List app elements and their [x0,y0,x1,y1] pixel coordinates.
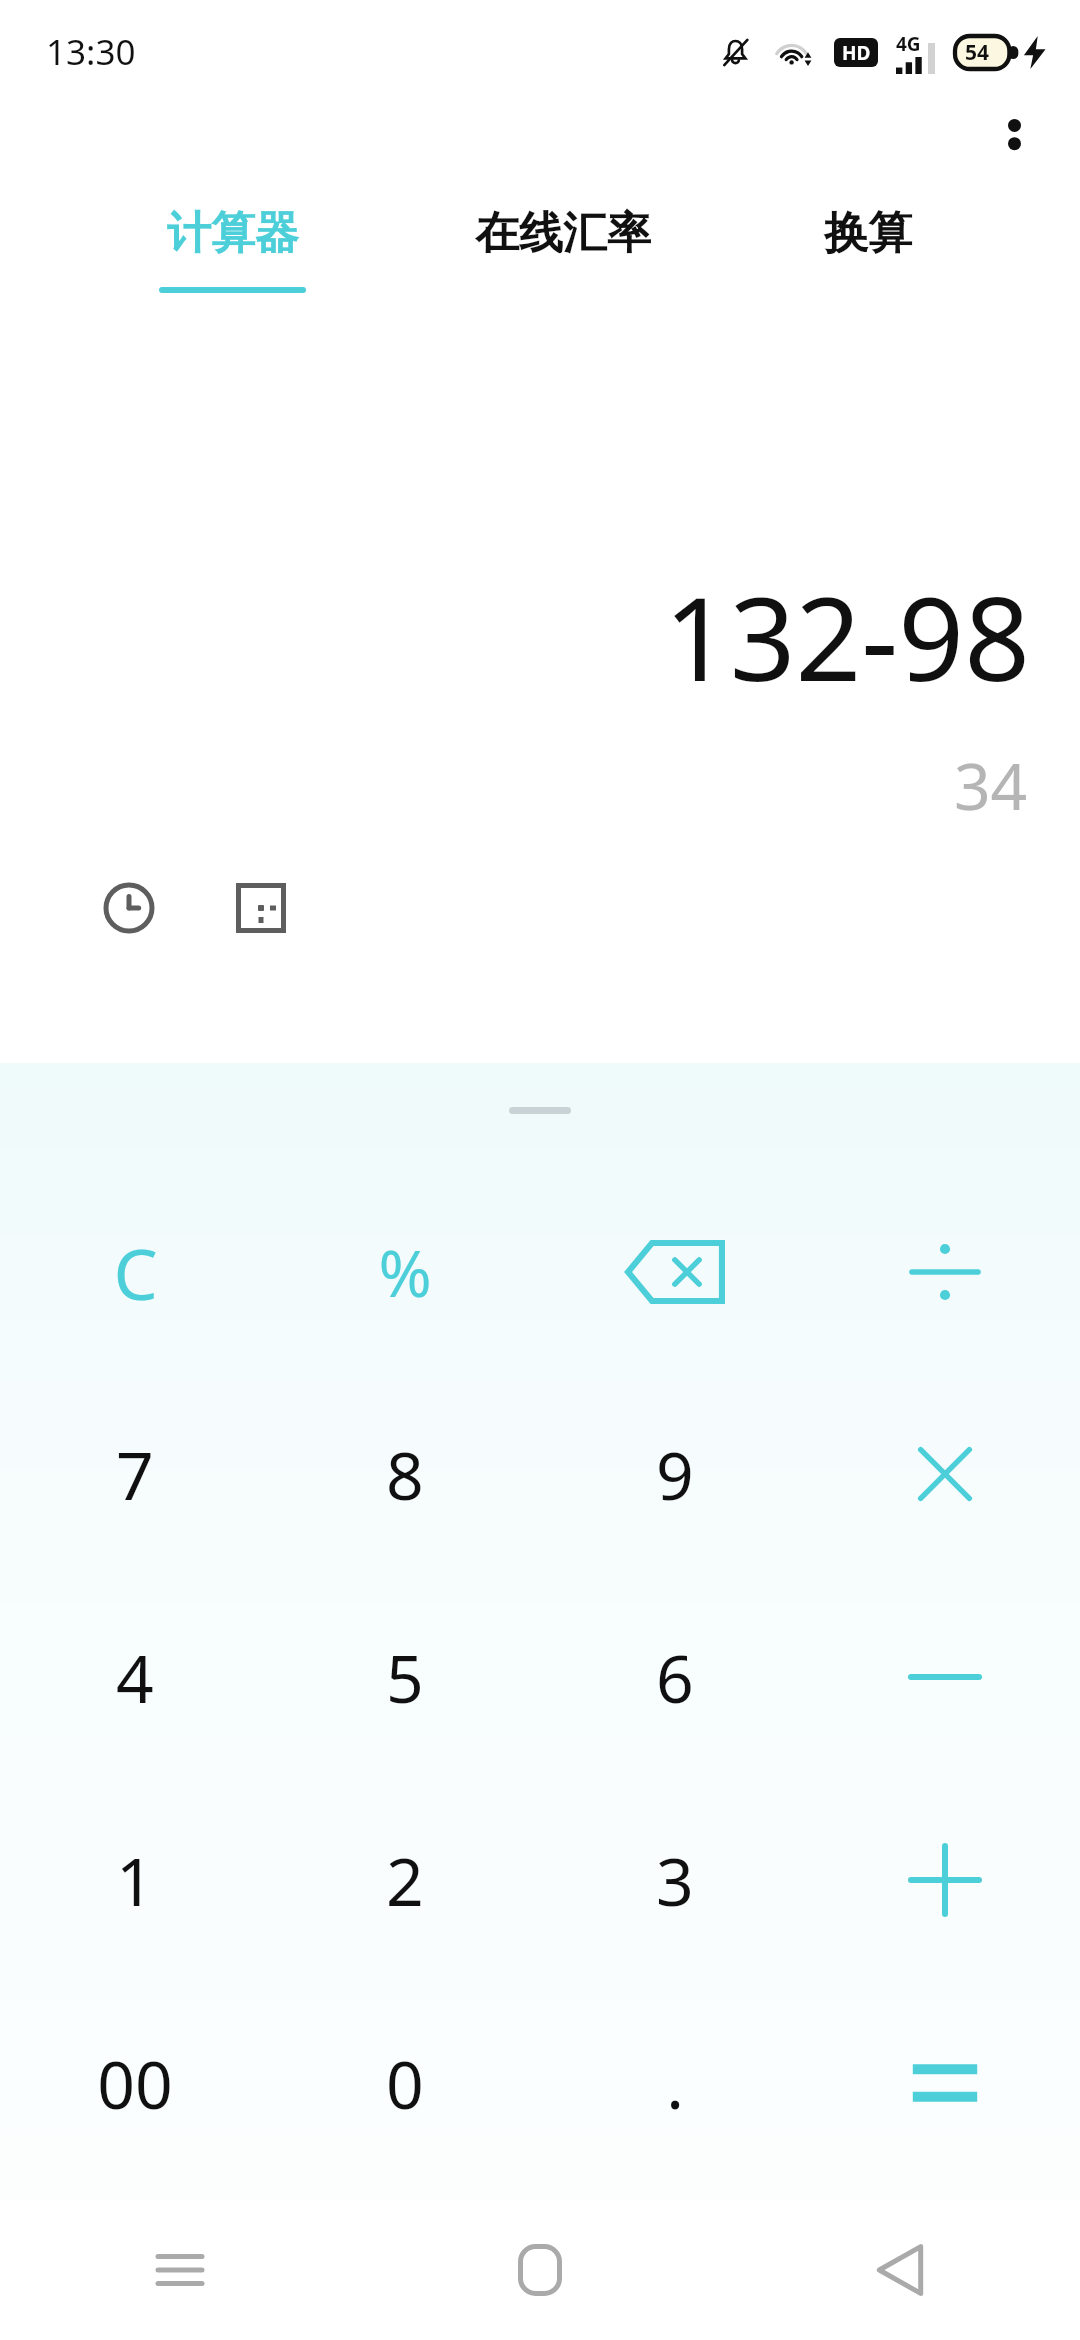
staticText: 4G [896,31,921,57]
staticText: 6 [656,1632,694,1722]
button[interactable]: 8 [270,1373,540,1575]
staticText: 计算器 [167,206,299,261]
staticText: HD [842,40,871,66]
staticText: 9 [656,1429,694,1519]
button[interactable]: Minus [810,1575,1080,1778]
staticText: 8 [386,1429,424,1519]
staticText: 00 [97,2038,173,2128]
staticText: 54 [965,38,990,67]
button[interactable]: Recents [0,2200,360,2340]
button[interactable]: Equals [810,1981,1080,2184]
staticText: 在线汇率 [475,206,651,261]
button[interactable]: % [270,1171,540,1373]
staticText: 132-98 [664,558,1030,715]
button[interactable]: 2 [270,1778,540,1981]
staticText: 0 [386,2038,424,2128]
button[interactable]: Scientific keypad [218,865,304,951]
button[interactable]: Plus [810,1778,1080,1981]
button[interactable]: 在线汇率 [430,180,695,330]
staticText: C [113,1225,158,1320]
button[interactable]: Multiply [810,1373,1080,1575]
staticText: 4 [116,1632,154,1722]
button[interactable]: Backspace [540,1171,810,1373]
button[interactable]: Divide [810,1171,1080,1373]
staticText: 34 [954,742,1028,829]
button[interactable]: 7 [0,1373,270,1575]
staticText: . [666,2038,684,2128]
button[interactable]: 5 [270,1575,540,1778]
staticText: 7 [116,1429,154,1519]
button[interactable]: Back [720,2200,1080,2340]
button[interactable]: . [540,1981,810,2184]
staticText: 换算 [824,206,912,261]
button[interactable]: Home [360,2200,720,2340]
button[interactable]: 4 [0,1575,270,1778]
staticText: 1 [116,1835,154,1925]
button[interactable]: C [0,1171,270,1373]
button[interactable]: History [86,865,172,951]
button[interactable]: 00 [0,1981,270,2184]
button[interactable]: 9 [540,1373,810,1575]
staticText: 3 [656,1835,694,1925]
staticText: % [378,1229,432,1316]
staticText: 5 [386,1632,424,1722]
button[interactable]: 1 [0,1778,270,1981]
button[interactable]: More options [972,94,1056,178]
button[interactable]: 计算器 [110,180,355,330]
button[interactable]: 换算 [765,180,970,330]
button[interactable]: 0 [270,1981,540,2184]
button[interactable]: 6 [540,1575,810,1778]
button[interactable]: 3 [540,1778,810,1981]
staticText: 13:30 [46,28,136,76]
staticText: 2 [386,1835,424,1925]
